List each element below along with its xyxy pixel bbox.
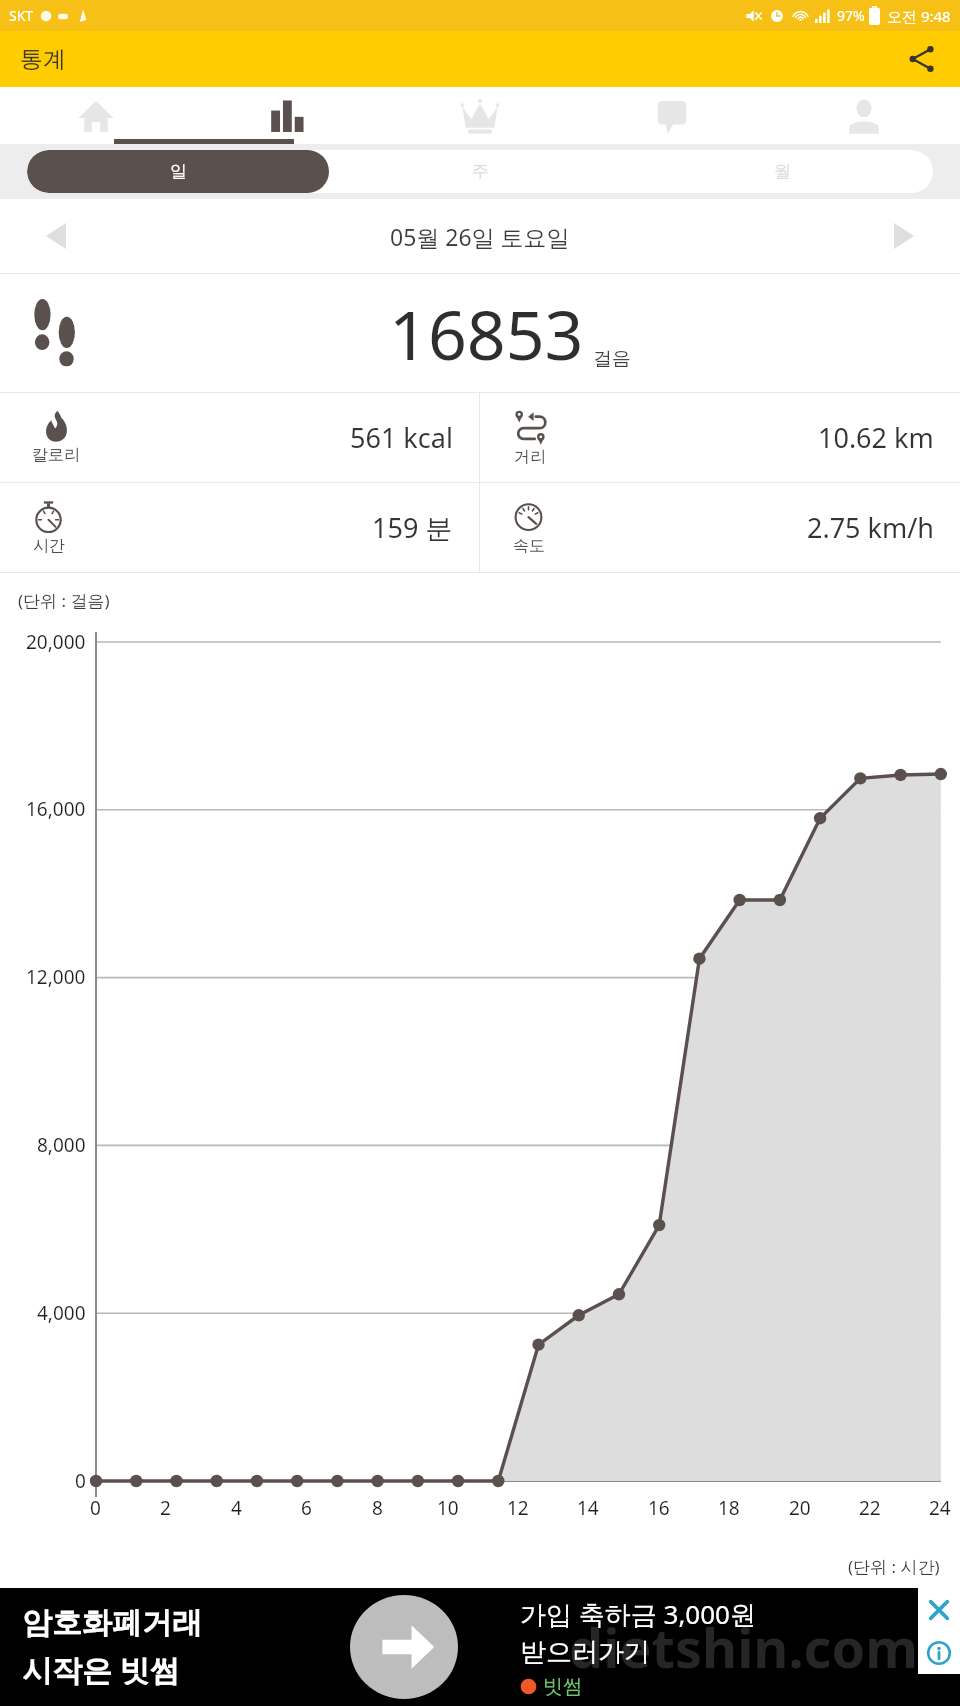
button[interactable]: 일	[27, 150, 329, 193]
button[interactable]: Home	[0, 87, 192, 144]
button[interactable]: Ad information	[918, 1631, 960, 1674]
staticText: 10	[437, 1495, 459, 1521]
staticText: 시작은 빗썸	[22, 1649, 180, 1690]
staticText: 22	[859, 1495, 881, 1521]
staticText: 2.75 km/h	[807, 509, 934, 546]
staticText: 4	[231, 1495, 242, 1521]
staticText: 주	[472, 161, 489, 182]
staticText: 시간	[33, 536, 65, 556]
staticText: 빗썸	[543, 1674, 583, 1699]
staticText: 18	[718, 1495, 740, 1521]
staticText: 97%	[837, 6, 865, 25]
button[interactable]: 시간	[0, 483, 479, 572]
staticText: 20	[789, 1495, 811, 1521]
staticText: 159 분	[372, 509, 453, 546]
staticText: 10.62 km	[818, 419, 934, 456]
button[interactable]: 속도	[480, 483, 960, 572]
button[interactable]: dietshin.com	[0, 1588, 960, 1706]
staticText: 8,000	[37, 1132, 86, 1158]
staticText: (단위 : 시간)	[848, 1555, 940, 1578]
staticText: 칼로리	[32, 445, 80, 465]
staticText: 14	[577, 1495, 599, 1521]
staticText: 561 kcal	[350, 419, 453, 456]
staticText: 4,000	[37, 1300, 86, 1326]
staticText: 오전 9:48	[887, 6, 951, 26]
button[interactable]: Next day	[848, 199, 960, 273]
button[interactable]: Previous day	[0, 199, 112, 273]
button[interactable]: 칼로리	[0, 393, 479, 482]
staticText: 가입 축하금 3,000원	[520, 1596, 756, 1632]
staticText: 16	[648, 1495, 670, 1521]
staticText: 받으러가기	[520, 1636, 650, 1669]
staticText: 통계	[20, 45, 66, 74]
staticText: 암호화폐거래	[22, 1604, 202, 1642]
staticText: SKT	[9, 6, 34, 25]
button[interactable]: 16853	[0, 274, 960, 392]
staticText: 걸음	[593, 347, 631, 371]
staticText: 16853	[389, 287, 584, 380]
staticText: 8	[372, 1495, 383, 1521]
button[interactable]: Profile	[768, 87, 960, 144]
button[interactable]: Share	[896, 33, 948, 85]
button[interactable]: 거리	[480, 393, 960, 482]
button[interactable]: Close ad	[918, 1588, 960, 1631]
staticText: 12	[507, 1495, 529, 1521]
staticText: 2	[160, 1495, 171, 1521]
staticText: 월	[774, 161, 791, 182]
staticText: 일	[170, 161, 187, 182]
staticText: 속도	[513, 536, 545, 556]
button[interactable]: Ranking	[384, 87, 576, 144]
staticText: 20,000	[26, 629, 86, 655]
staticText: 24	[929, 1495, 951, 1521]
button[interactable]: Community	[576, 87, 768, 144]
staticText: 16,000	[26, 796, 86, 822]
staticText: 05월 26일 토요일	[390, 221, 570, 252]
staticText: dietshin.com	[569, 1610, 918, 1684]
staticText: 6	[301, 1495, 312, 1521]
button[interactable]: 월	[631, 150, 933, 193]
staticText: 0	[90, 1495, 101, 1521]
staticText: (단위 : 걸음)	[18, 589, 110, 612]
staticText: 거리	[514, 447, 546, 467]
staticText: 0	[75, 1468, 86, 1494]
staticText: 12,000	[26, 964, 86, 990]
button[interactable]: Statistics	[192, 87, 384, 144]
